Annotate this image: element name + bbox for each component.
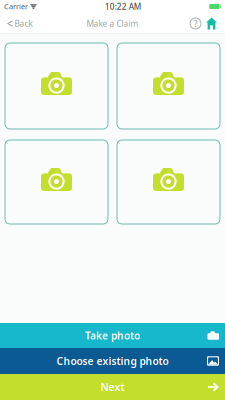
staticText: ? xyxy=(193,17,197,30)
button[interactable]: Next xyxy=(0,374,225,400)
staticText: Next xyxy=(100,380,124,394)
staticText: Take photo xyxy=(85,328,140,342)
staticText: Choose existing photo xyxy=(56,354,168,368)
button[interactable]: Help xyxy=(189,15,202,32)
button[interactable]: Add photo xyxy=(5,140,108,224)
staticText: 10:22 AM xyxy=(105,1,142,12)
button[interactable]: Take photo xyxy=(0,323,225,348)
staticText: Make a Claim xyxy=(86,18,138,29)
button[interactable]: Add photo xyxy=(117,140,220,224)
button[interactable]: Add photo xyxy=(117,43,220,129)
button[interactable]: Back xyxy=(3,15,36,32)
button[interactable]: Home xyxy=(202,15,219,31)
staticText: Back xyxy=(14,18,32,29)
button[interactable]: Add photo xyxy=(5,43,108,129)
button[interactable]: Choose existing photo xyxy=(0,348,225,374)
staticText: Carrier xyxy=(4,1,28,11)
